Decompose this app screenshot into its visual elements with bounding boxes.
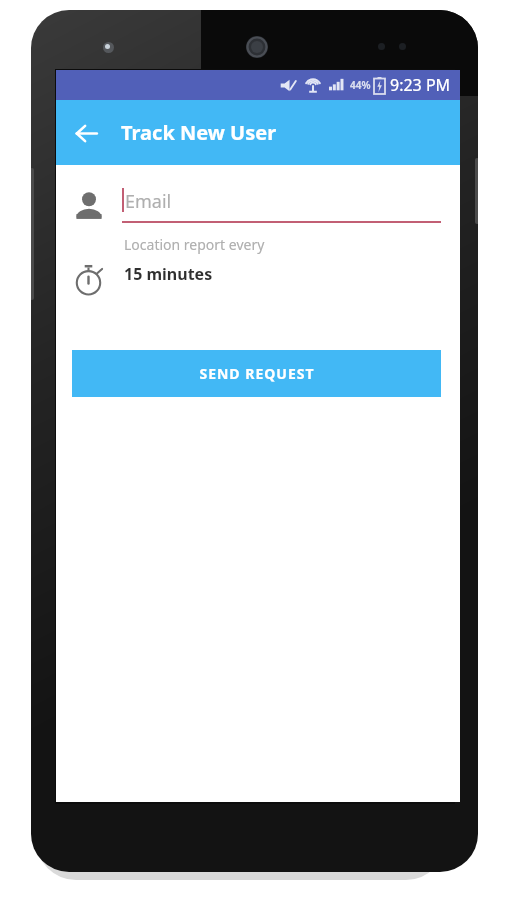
button[interactable]: Email [122, 183, 441, 229]
staticText: Location report every [124, 235, 265, 254]
staticText: Track New User [121, 119, 277, 146]
button[interactable]: 15 minutes [122, 259, 441, 289]
staticText: SEND REQUEST [199, 364, 315, 383]
staticText: Email [125, 189, 172, 214]
staticText: 9:23 PM [390, 74, 451, 96]
button[interactable]: SEND REQUEST [72, 350, 441, 397]
button[interactable]: Back [64, 111, 108, 155]
staticText: 15 minutes [124, 263, 213, 285]
staticText: 44% [350, 78, 371, 92]
